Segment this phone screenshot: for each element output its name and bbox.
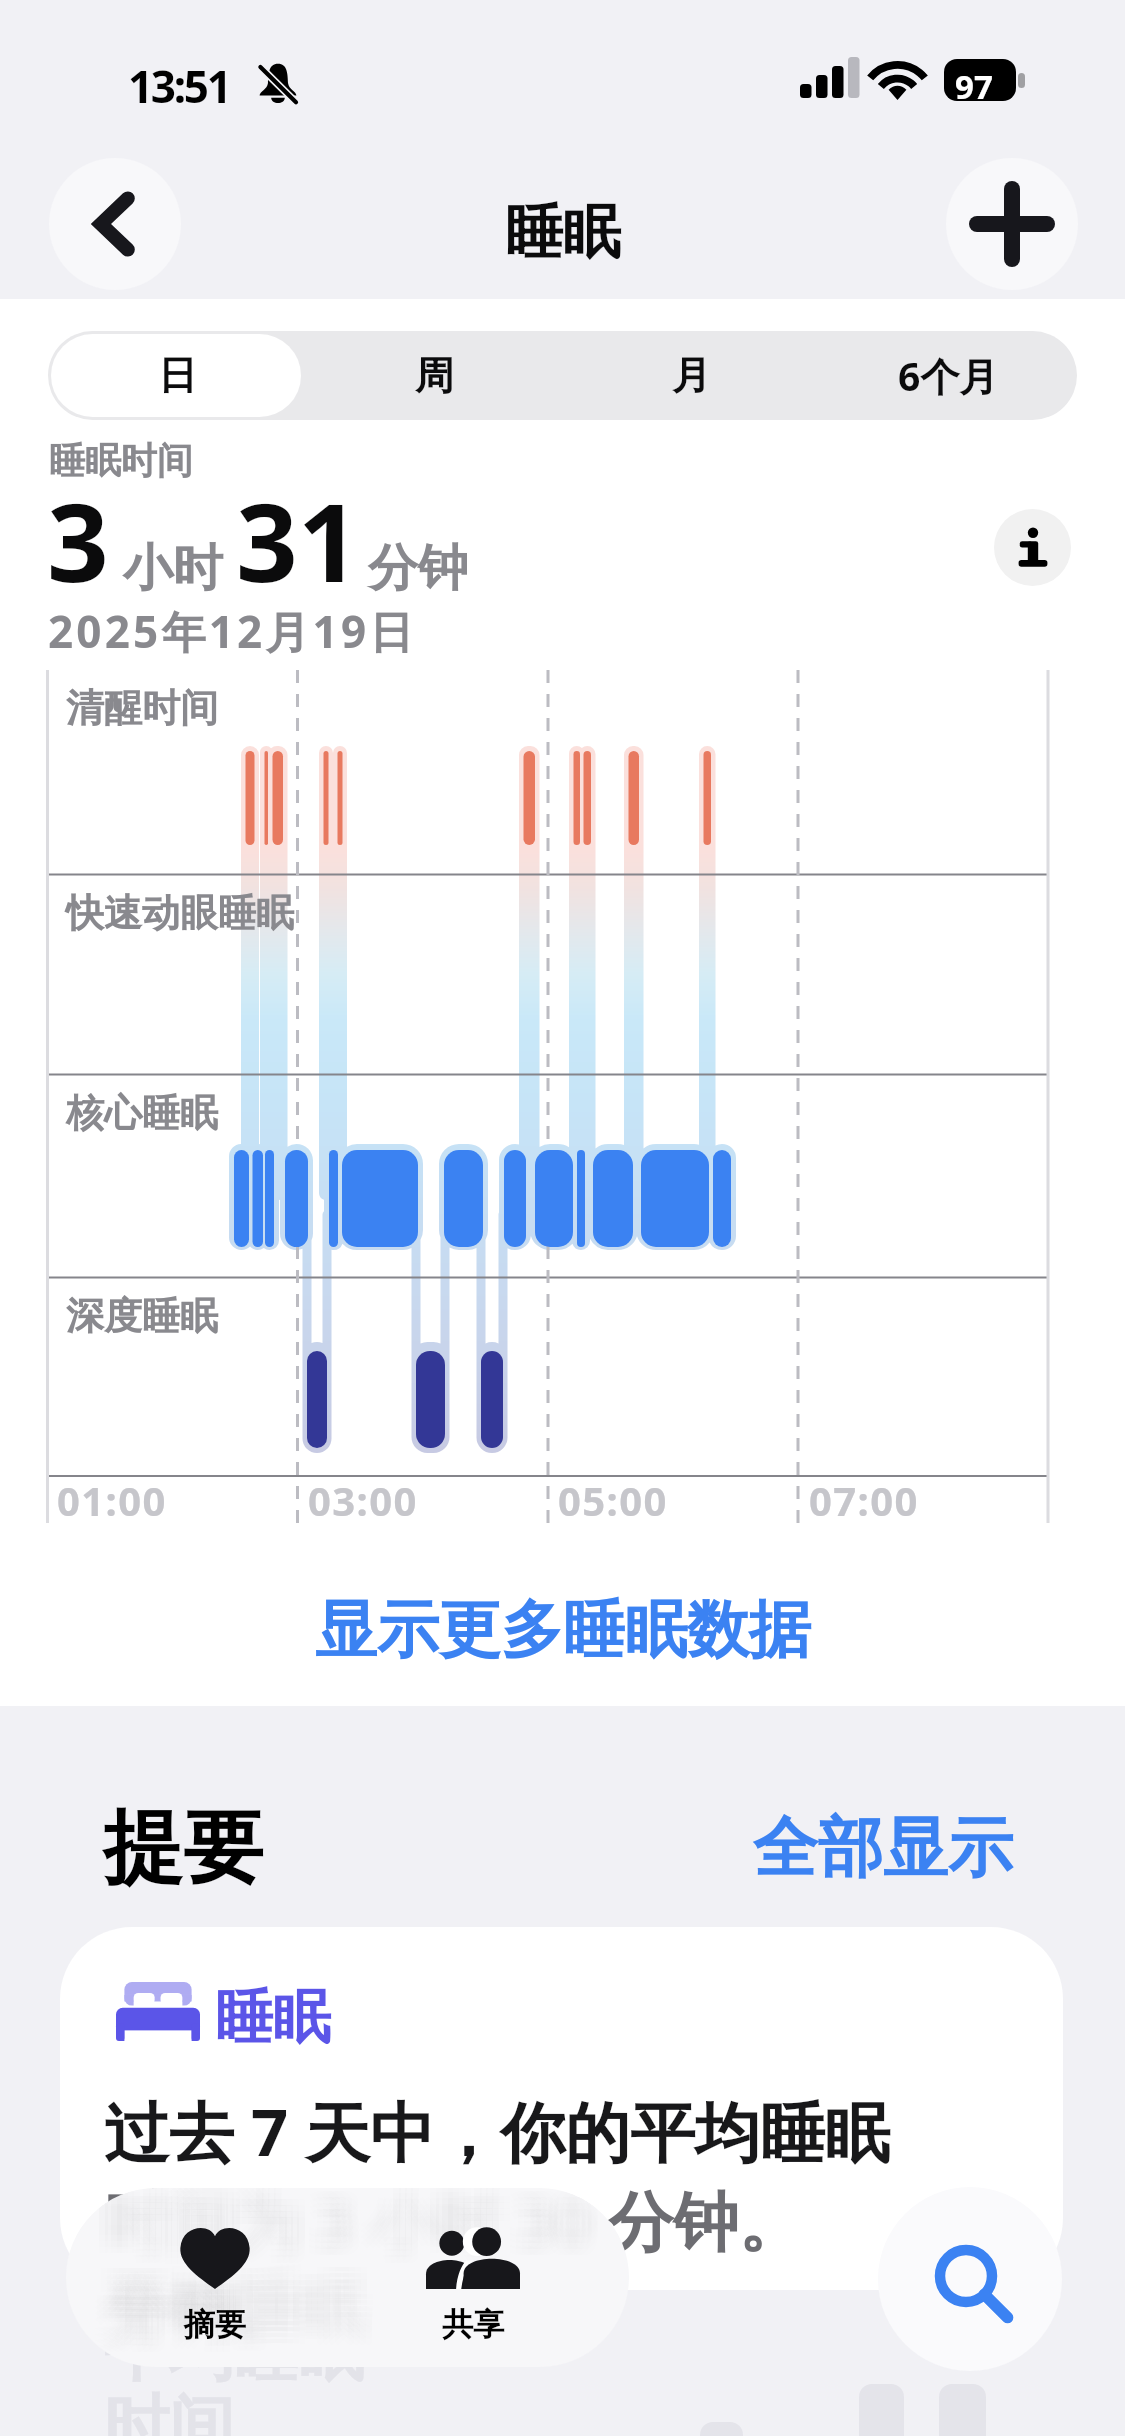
staticText: 提要 (103, 1798, 263, 1899)
staticText: 周 (415, 351, 454, 400)
staticText: 03:00 (308, 1473, 418, 1527)
staticText: 6个月 (898, 349, 999, 402)
staticText: 07:00 (809, 1473, 919, 1527)
staticText: 时间为 3 小时 30 分钟。 (101, 2188, 629, 2345)
staticText: 摘要 (184, 2305, 246, 2344)
button[interactable]: 摘要 (125, 2225, 305, 2353)
staticText: 时间为 3 小时 30 分钟。 (95, 2188, 629, 2351)
staticText: 31 (236, 467, 360, 614)
staticText: 清醒时间 (66, 684, 218, 732)
staticText: 平均睡眠 (104, 2311, 364, 2393)
staticText: 平均睡眠 (113, 2263, 373, 2345)
staticText: 平均睡眠 (101, 2257, 361, 2339)
staticText: 小时 (123, 537, 223, 600)
staticText: 13:51 (128, 56, 230, 116)
button[interactable]: 周 (306, 331, 563, 420)
staticText: 平均睡眠 (101, 2269, 361, 2351)
staticText: 平均睡眠 (113, 2257, 373, 2339)
staticText: 时间为 3 小时 30 分钟。 (113, 2188, 629, 2345)
staticText: 时间为 3 小时 30 分钟。 (104, 2176, 804, 2265)
staticText: 平均睡眠 (107, 2275, 367, 2357)
staticText: 97 (955, 64, 993, 109)
staticText: 平均睡眠 (101, 2263, 361, 2345)
staticText: 睡眠 (505, 196, 621, 269)
staticText: 平均睡眠 (113, 2269, 373, 2351)
button[interactable]: Info (994, 509, 1071, 586)
staticText: 时间为 3 小时 30 分钟。 (101, 2188, 629, 2351)
staticText: 日 (158, 351, 197, 400)
staticText: 2025年12月19日 (48, 601, 417, 661)
staticText: 时间为 3 小时 30 分钟。 (95, 2188, 629, 2357)
staticText: 05:00 (558, 1473, 668, 1527)
staticText: 时间为 3 小时 30 分钟。 (101, 2188, 629, 2357)
staticText: 时间为 3 小时 30 分钟。 (95, 2188, 629, 2363)
staticText: 过去 7 天中，你的平均睡眠 (104, 2087, 890, 2176)
button[interactable]: Back (49, 158, 181, 290)
staticText: 时间为 3 小时 30 分钟。 (113, 2188, 629, 2363)
staticText: 分钟 (368, 537, 468, 600)
staticText: 快速动眼睡眠 (66, 889, 294, 937)
staticText: 睡眠 (215, 1981, 331, 2054)
staticText: 平均睡眠 (95, 2263, 355, 2345)
staticText: 共享 (442, 2305, 504, 2344)
button[interactable]: 全部显示 (753, 1807, 1013, 1889)
staticText: 时间为 3 小时 30 分钟。 (107, 2188, 629, 2345)
staticText: 3 (47, 467, 109, 614)
staticText: 时间为 3 小时 30 分钟。 (113, 2188, 629, 2351)
staticText: 平均睡眠 (95, 2269, 355, 2351)
button[interactable]: 月 (563, 331, 820, 420)
staticText: 时间为 3 小时 30 分钟。 (107, 2188, 629, 2363)
staticText: 平均睡眠 (107, 2269, 367, 2351)
staticText: 时间为 3 小时 30 分钟。 (95, 2188, 629, 2345)
staticText: 全部显示 (753, 1807, 1013, 1889)
staticText: 时间为 3 小时 30 分钟。 (113, 2188, 629, 2357)
button[interactable]: Add (946, 158, 1078, 290)
staticText: 时间为 3 小时 30 分钟。 (101, 2188, 629, 2363)
staticText: 时间为 3 小时 30 分钟。 (107, 2188, 629, 2357)
staticText: 睡眠时间 (49, 438, 193, 483)
button[interactable]: 共享 (383, 2225, 563, 2353)
button[interactable]: 日 (48, 331, 306, 420)
staticText: 时间为 3 小时 30 分钟。 (107, 2188, 629, 2351)
staticText: 01:00 (57, 1473, 167, 1527)
staticText: 平均睡眠 (101, 2275, 361, 2357)
staticText: 时间 (104, 2385, 234, 2436)
staticText: 平均睡眠 (107, 2257, 367, 2339)
staticText: 深度睡眠 (66, 1292, 218, 1340)
staticText: 平均睡眠 (107, 2263, 367, 2345)
staticText: 平均睡眠 (113, 2275, 373, 2357)
staticText: 平均睡眠 (95, 2257, 355, 2339)
staticText: 核心睡眠 (66, 1089, 218, 1137)
button[interactable]: 睡眠 (60, 1927, 1063, 2290)
staticText: 显示更多睡眠数据 (315, 1591, 811, 1669)
staticText: 月 (672, 351, 711, 400)
button[interactable]: Search (878, 2187, 1062, 2371)
staticText: 平均睡眠 (95, 2275, 355, 2357)
button[interactable]: 显示更多睡眠数据 (0, 1570, 1125, 1690)
button[interactable]: 6个月 (820, 331, 1077, 420)
